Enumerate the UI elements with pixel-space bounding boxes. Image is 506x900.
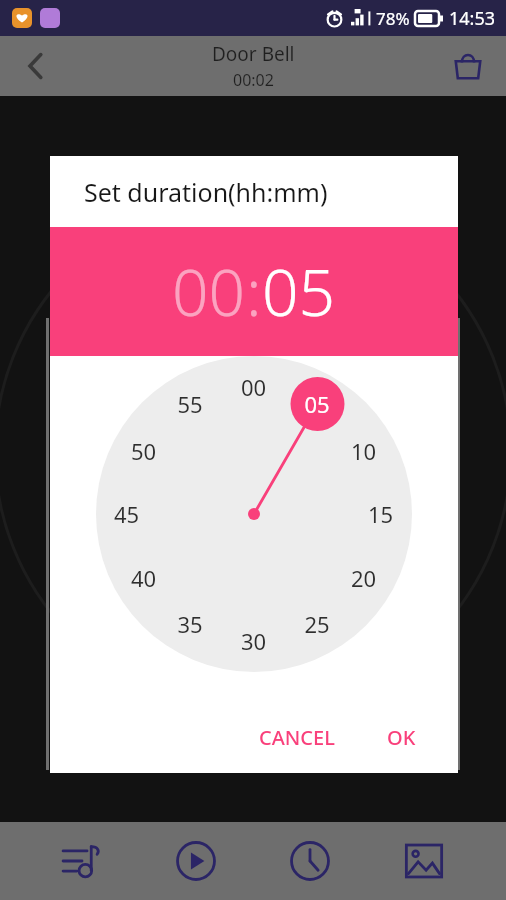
button[interactable]: Timer — [278, 829, 342, 893]
button[interactable]: CANCEL — [247, 714, 347, 761]
staticText: 00 — [172, 248, 246, 335]
button[interactable]: Play — [164, 829, 228, 893]
button[interactable] — [50, 356, 458, 701]
button[interactable]: OK — [375, 714, 428, 761]
staticText: 00:02 — [233, 69, 274, 91]
button[interactable]: Shop — [444, 42, 492, 90]
staticText: 05 — [262, 248, 336, 335]
button[interactable]: 00 — [172, 248, 246, 335]
button[interactable]: Back — [12, 42, 60, 90]
button[interactable]: Gallery — [392, 829, 456, 893]
staticText: OK — [387, 724, 416, 751]
staticText: Set duration(hh:mm) — [84, 175, 328, 209]
staticText: 78% — [376, 7, 410, 30]
button[interactable]: 05 — [262, 248, 336, 335]
staticText: CANCEL — [259, 724, 335, 751]
staticText: 14:53 — [449, 6, 496, 31]
button[interactable]: Playlist — [50, 829, 114, 893]
staticText: : — [246, 248, 262, 335]
staticText: Door Bell — [212, 41, 295, 67]
